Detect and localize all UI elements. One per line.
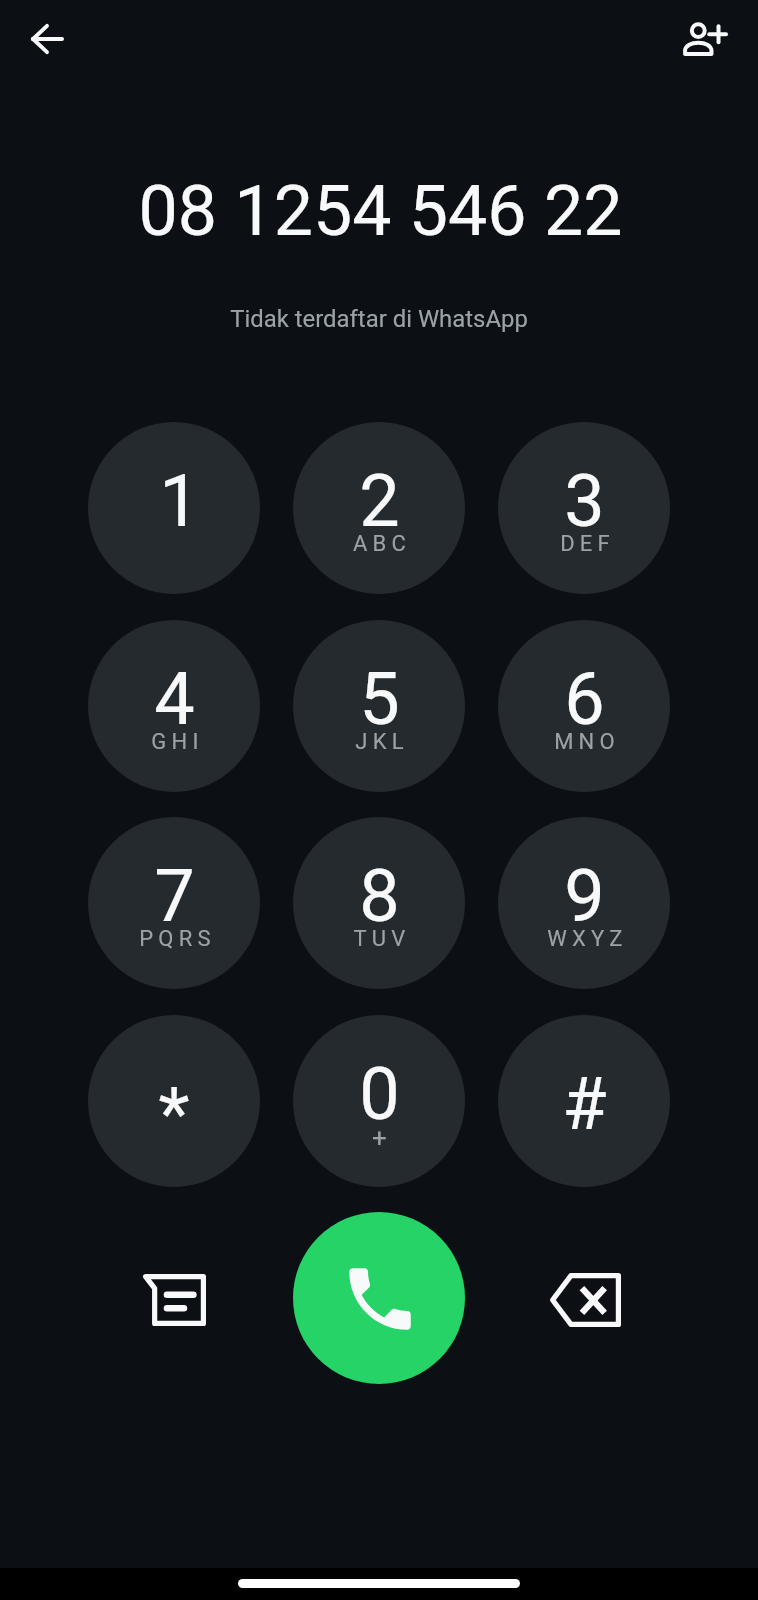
- staticText: 8: [359, 854, 400, 938]
- staticText: PQRS: [139, 926, 216, 952]
- button[interactable]: *: [88, 1015, 260, 1187]
- button[interactable]: 4: [88, 620, 260, 792]
- button[interactable]: #: [498, 1015, 670, 1187]
- button[interactable]: Add contact: [674, 9, 734, 69]
- staticText: ABC: [353, 531, 411, 557]
- staticText: 9: [564, 854, 605, 938]
- staticText: *: [158, 1072, 190, 1156]
- button[interactable]: 8: [293, 817, 465, 989]
- button[interactable]: 5: [293, 620, 465, 792]
- button[interactable]: Backspace: [539, 1254, 631, 1346]
- staticText: JKL: [355, 729, 409, 755]
- staticText: 4: [154, 657, 195, 741]
- button[interactable]: 9: [498, 817, 670, 989]
- button[interactable]: 7: [88, 817, 260, 989]
- staticText: TUV: [353, 926, 411, 952]
- button[interactable]: 2: [293, 422, 465, 594]
- staticText: WXYZ: [547, 926, 628, 952]
- button[interactable]: 6: [498, 620, 670, 792]
- button[interactable]: Call: [293, 1212, 465, 1384]
- staticText: MNO: [554, 729, 620, 755]
- staticText: 08 1254 546 22: [138, 170, 623, 252]
- button[interactable]: 0: [293, 1015, 465, 1187]
- staticText: 1: [159, 459, 200, 543]
- staticText: 0: [359, 1052, 400, 1136]
- staticText: 2: [359, 459, 400, 543]
- staticText: GHI: [151, 729, 204, 755]
- staticText: 7: [154, 854, 195, 938]
- button[interactable]: Message: [128, 1254, 220, 1346]
- button[interactable]: Back: [17, 9, 77, 69]
- button[interactable]: 1: [88, 422, 260, 594]
- staticText: 6: [564, 657, 605, 741]
- staticText: DEF: [560, 531, 615, 557]
- button[interactable]: 3: [498, 422, 670, 594]
- staticText: #: [562, 1062, 607, 1146]
- staticText: +: [372, 1123, 387, 1153]
- staticText: 3: [564, 459, 605, 543]
- staticText: Tidak terdaftar di WhatsApp: [230, 305, 528, 333]
- staticText: 5: [359, 657, 400, 741]
